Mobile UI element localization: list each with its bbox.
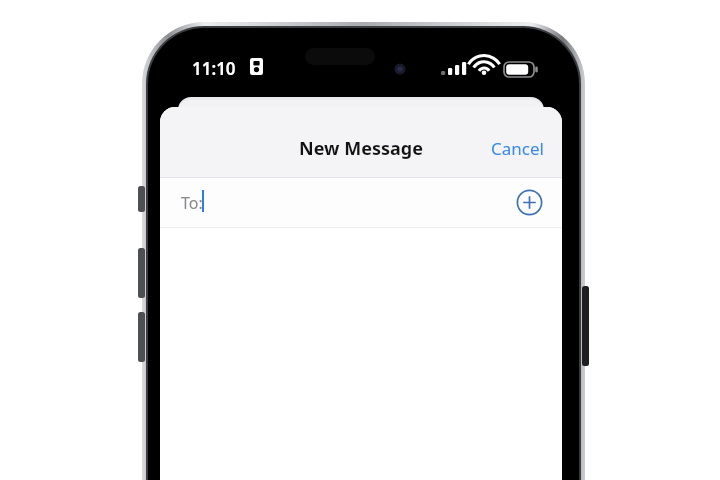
staticText: New Message <box>299 136 423 161</box>
button[interactable]: Add contact <box>516 189 543 216</box>
staticText: 11:10 <box>192 57 236 80</box>
button[interactable]: To: <box>160 178 562 227</box>
staticText: To: <box>181 192 203 214</box>
staticText: Cancel <box>491 137 544 160</box>
button[interactable]: Cancel <box>482 133 552 163</box>
